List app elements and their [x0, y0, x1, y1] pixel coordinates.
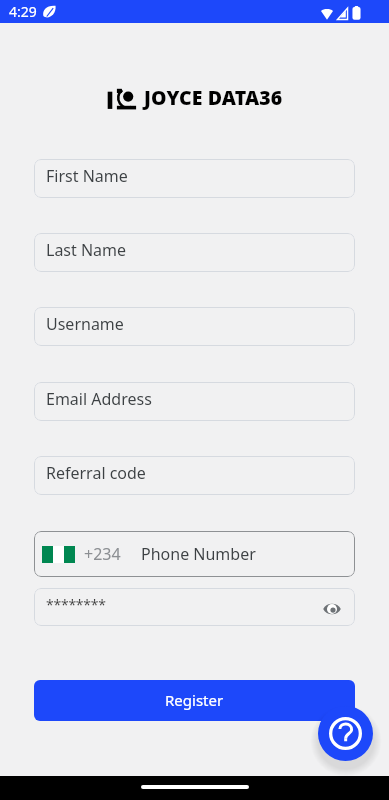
staticText: Email Address: [46, 388, 152, 410]
staticText: Referral code: [46, 462, 146, 484]
staticText: +234: [84, 543, 121, 565]
staticText: First Name: [46, 165, 128, 187]
button[interactable]: Last Name: [34, 233, 355, 272]
staticText: JOYCE DATA36: [144, 84, 283, 111]
staticText: 4:29: [9, 2, 37, 21]
button[interactable]: First Name: [34, 159, 355, 198]
staticText: Phone Number: [141, 543, 256, 565]
button[interactable]: Show password: [320, 597, 344, 621]
button[interactable]: Referral code: [34, 456, 355, 495]
staticText: Last Name: [46, 239, 127, 261]
button[interactable]: Help: [318, 706, 373, 761]
button[interactable]: ********: [34, 588, 355, 626]
staticText: Register: [165, 690, 224, 710]
staticText: Username: [46, 313, 124, 335]
staticText: ********: [46, 595, 106, 614]
button[interactable]: +234: [34, 531, 355, 577]
button[interactable]: Username: [34, 307, 355, 346]
button[interactable]: Register: [34, 680, 355, 721]
button[interactable]: Email Address: [34, 382, 355, 421]
